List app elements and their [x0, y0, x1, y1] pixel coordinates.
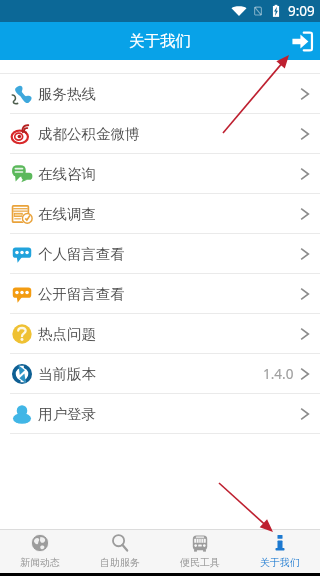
staticText: 便民工具 — [180, 556, 220, 569]
button[interactable]: 当前版本 — [0, 354, 320, 394]
staticText: 新闻动态 — [20, 556, 60, 569]
staticText: 热点问题 — [38, 325, 96, 343]
staticText: 个人留言查看 — [38, 245, 125, 263]
button[interactable]: 在线咨询 — [0, 154, 320, 194]
staticText: 在线调查 — [38, 205, 96, 223]
button[interactable]: 新闻动态 — [0, 530, 80, 573]
button[interactable]: 关于我们 — [240, 530, 320, 573]
button[interactable]: 成都公积金微博 — [0, 114, 320, 154]
button[interactable]: 公开留言查看 — [0, 274, 320, 314]
staticText: 关于我们 — [129, 31, 191, 51]
staticText: 在线咨询 — [38, 165, 96, 183]
staticText: 当前版本 — [38, 365, 96, 383]
staticText: 关于我们 — [260, 556, 300, 569]
button[interactable]: 个人留言查看 — [0, 234, 320, 274]
staticText: 用户登录 — [38, 405, 96, 423]
button[interactable]: 在线调查 — [0, 194, 320, 234]
button[interactable]: 用户登录 — [0, 394, 320, 434]
staticText: 1.4.0 — [263, 365, 294, 383]
staticText: 服务热线 — [38, 85, 96, 103]
button[interactable]: 服务热线 — [0, 74, 320, 114]
staticText: 成都公积金微博 — [38, 125, 140, 143]
staticText: 9:09 — [288, 2, 315, 20]
staticText: 自助服务 — [100, 556, 140, 569]
button[interactable]: 自助服务 — [80, 530, 160, 573]
button[interactable]: Exit — [287, 26, 317, 56]
button[interactable]: 热点问题 — [0, 314, 320, 354]
button[interactable]: 便民工具 — [160, 530, 240, 573]
staticText: 公开留言查看 — [38, 285, 125, 303]
